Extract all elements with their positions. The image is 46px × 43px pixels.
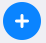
button[interactable]: Add [3, 2, 41, 40]
